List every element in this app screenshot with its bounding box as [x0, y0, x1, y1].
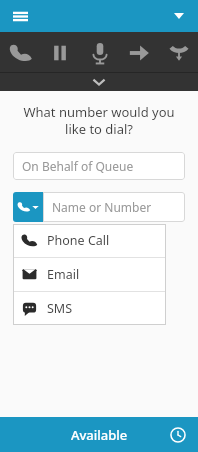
button[interactable]: Collapse — [0, 73, 198, 91]
button[interactable]: Available — [0, 417, 198, 452]
staticText: Email — [47, 266, 80, 283]
button[interactable]: Menu — [7, 3, 33, 29]
button[interactable]: Phone Call — [13, 224, 166, 257]
staticText: On Behalf of Queue — [22, 158, 134, 174]
button[interactable]: SMS — [13, 292, 166, 325]
staticText: Phone Call — [47, 232, 110, 249]
button[interactable]: On Behalf of Queue — [13, 152, 185, 180]
button[interactable]: Expand — [166, 3, 192, 29]
button[interactable]: Email — [13, 258, 166, 291]
button[interactable]: Name or Number — [43, 192, 185, 222]
button[interactable]: Transfer — [119, 33, 158, 73]
button[interactable]: Contact type: Phone Call — [13, 192, 43, 222]
staticText: SMS — [47, 300, 73, 317]
button[interactable]: Call — [1, 33, 40, 73]
button[interactable]: Hang up — [159, 33, 198, 73]
button[interactable]: Hold — [40, 33, 79, 73]
staticText: What number would you like to dial? — [14, 103, 184, 138]
button[interactable]: Mute — [80, 33, 119, 73]
button[interactable]: Time in status — [166, 423, 190, 447]
staticText: Available — [71, 426, 128, 444]
staticText: Name or Number — [52, 199, 152, 215]
